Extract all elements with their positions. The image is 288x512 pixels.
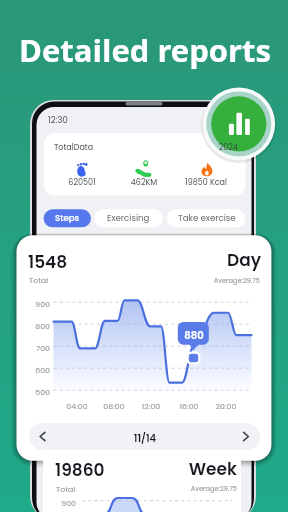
staticText: Average:29.75 [120, 276, 260, 285]
staticText: 11/14 [5, 431, 285, 445]
staticText: Exercising [107, 212, 150, 224]
staticText: Week [97, 457, 237, 481]
button[interactable]: Next [220, 423, 260, 450]
staticText: TotalData [54, 142, 94, 153]
staticText: Day [121, 248, 261, 272]
staticText: 16:00 [49, 401, 288, 412]
staticText: 700 [0, 343, 50, 354]
staticText: 2024 [98, 142, 238, 153]
staticText: Average:29.75 [97, 484, 237, 493]
staticText: 19850 Kcal [66, 177, 288, 188]
button[interactable]: Statistics [206, 91, 272, 157]
staticText: 800 [0, 321, 50, 332]
staticText: Total [56, 484, 76, 495]
staticText: 900 [0, 498, 76, 509]
staticText: 600 [0, 365, 50, 376]
button[interactable]: Previous [29, 423, 69, 450]
staticText: 20:00 [86, 401, 288, 412]
staticText: 12:30 [48, 114, 68, 126]
staticText: 900 [0, 299, 50, 310]
staticText: 19860 [55, 458, 105, 482]
staticText: 620501 [0, 177, 222, 188]
staticText: Take exercise [178, 212, 236, 224]
staticText: Steps [55, 212, 80, 224]
staticText: Detailed reports [5, 29, 285, 71]
button[interactable]: Exercising [94, 209, 163, 227]
staticText: 880 [54, 328, 288, 342]
staticText: Total [29, 275, 49, 286]
staticText: 462KM [4, 177, 284, 188]
button[interactable]: Take exercise [167, 209, 246, 227]
staticText: 12:00 [11, 401, 288, 412]
staticText: 1548 [28, 250, 68, 274]
staticText: 500 [0, 387, 50, 398]
button[interactable]: Steps [44, 209, 91, 227]
staticText: 04:00 [0, 401, 217, 412]
staticText: 08:00 [0, 401, 254, 412]
